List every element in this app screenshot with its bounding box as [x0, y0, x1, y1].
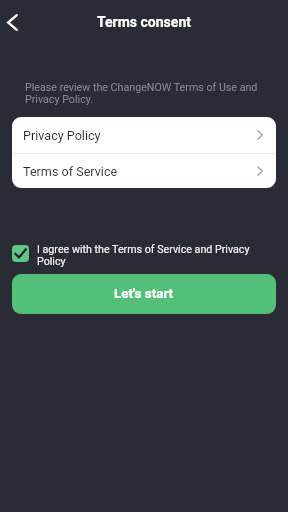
staticText: Terms of Service	[23, 164, 118, 179]
staticText: Let's start	[114, 286, 174, 302]
button[interactable]: Back	[1, 2, 24, 42]
button[interactable]: Privacy Policy	[12, 117, 276, 153]
button[interactable]: Terms of Service	[12, 154, 276, 188]
staticText: Please review the ChangeNOW Terms of Use…	[25, 81, 262, 105]
button[interactable]: I agree with the Terms of Service and Pr…	[12, 243, 276, 267]
button[interactable]: Let's start	[12, 274, 276, 314]
staticText: Terms consent	[97, 14, 191, 30]
staticText: Privacy Policy	[23, 128, 101, 143]
staticText: I agree with the Terms of Service and Pr…	[37, 243, 276, 267]
